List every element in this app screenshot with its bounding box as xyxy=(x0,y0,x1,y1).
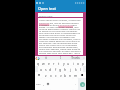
button[interactable]: Shift xyxy=(35,72,43,78)
staticText: b xyxy=(64,73,67,78)
button[interactable]: Thanks xyxy=(68,56,83,60)
button[interactable]: k xyxy=(73,66,78,72)
button[interactable]: g xyxy=(58,66,63,72)
button[interactable]: Google xyxy=(36,57,39,60)
staticText: p xyxy=(82,61,85,66)
button[interactable]: t xyxy=(56,60,61,66)
staticText: x xyxy=(50,73,52,78)
staticText: n xyxy=(69,73,72,78)
staticText: u xyxy=(67,61,70,66)
staticText: w xyxy=(42,61,45,66)
button[interactable]: I xyxy=(53,56,68,60)
staticText: i xyxy=(73,61,74,66)
button[interactable]: c xyxy=(53,72,58,78)
button[interactable]: p xyxy=(81,60,86,66)
button[interactable]: f xyxy=(53,66,58,72)
button[interactable]: Search here xyxy=(38,13,83,17)
staticText: m xyxy=(74,73,78,78)
button[interactable]: o xyxy=(76,60,81,66)
staticText: a xyxy=(40,67,42,72)
button[interactable]: s xyxy=(43,66,48,72)
button[interactable]: b xyxy=(63,72,68,78)
button[interactable]: e xyxy=(46,60,51,66)
button[interactable]: . xyxy=(73,78,78,90)
staticText: o xyxy=(77,61,80,66)
staticText: k xyxy=(75,67,77,72)
button[interactable]: Backspace xyxy=(78,72,86,78)
button[interactable]: d xyxy=(48,66,53,72)
button[interactable]: ?123 xyxy=(35,78,41,90)
button[interactable]: u xyxy=(66,60,71,66)
button[interactable]: w xyxy=(41,60,46,66)
staticText: d xyxy=(49,67,52,72)
button[interactable]: y xyxy=(61,60,66,66)
button[interactable]: Open text xyxy=(35,5,86,12)
button[interactable]: r xyxy=(51,60,56,66)
staticText: z xyxy=(45,73,47,78)
staticText: v xyxy=(60,73,62,78)
staticText: c xyxy=(55,73,57,78)
staticText: s xyxy=(45,67,47,72)
button[interactable]: j xyxy=(68,66,73,72)
button[interactable]: Emoji xyxy=(45,78,50,90)
button[interactable]: q xyxy=(35,60,41,66)
staticText: h xyxy=(64,67,67,72)
staticText: y xyxy=(63,61,65,66)
staticText: . xyxy=(75,82,76,86)
button[interactable]: h xyxy=(63,66,68,72)
staticText: Lorem ipsum dolor sit amet, consectetur … xyxy=(39,19,82,54)
button[interactable]: l xyxy=(78,66,83,72)
button[interactable]: z xyxy=(43,72,48,78)
staticText: f xyxy=(55,67,57,72)
button[interactable]: n xyxy=(68,72,73,78)
button[interactable]: m xyxy=(73,72,78,78)
staticText: l xyxy=(80,67,81,72)
staticText: r xyxy=(53,61,55,66)
staticText: e xyxy=(48,61,50,66)
staticText: g xyxy=(59,67,62,72)
button[interactable]: v xyxy=(58,72,63,78)
button[interactable]: , xyxy=(41,78,45,90)
staticText: ?123 xyxy=(36,83,41,86)
button[interactable]: it xyxy=(39,56,53,60)
button[interactable]: i xyxy=(71,60,76,66)
staticText: Open text xyxy=(38,6,56,11)
staticText: , xyxy=(43,82,44,86)
staticText: q xyxy=(37,61,40,66)
staticText: j xyxy=(70,67,71,72)
staticText: Search here xyxy=(39,14,53,17)
button[interactable]: x xyxy=(48,72,53,78)
staticText: t xyxy=(58,61,60,66)
button[interactable]: Send xyxy=(80,82,85,87)
button[interactable]: a xyxy=(38,66,43,72)
